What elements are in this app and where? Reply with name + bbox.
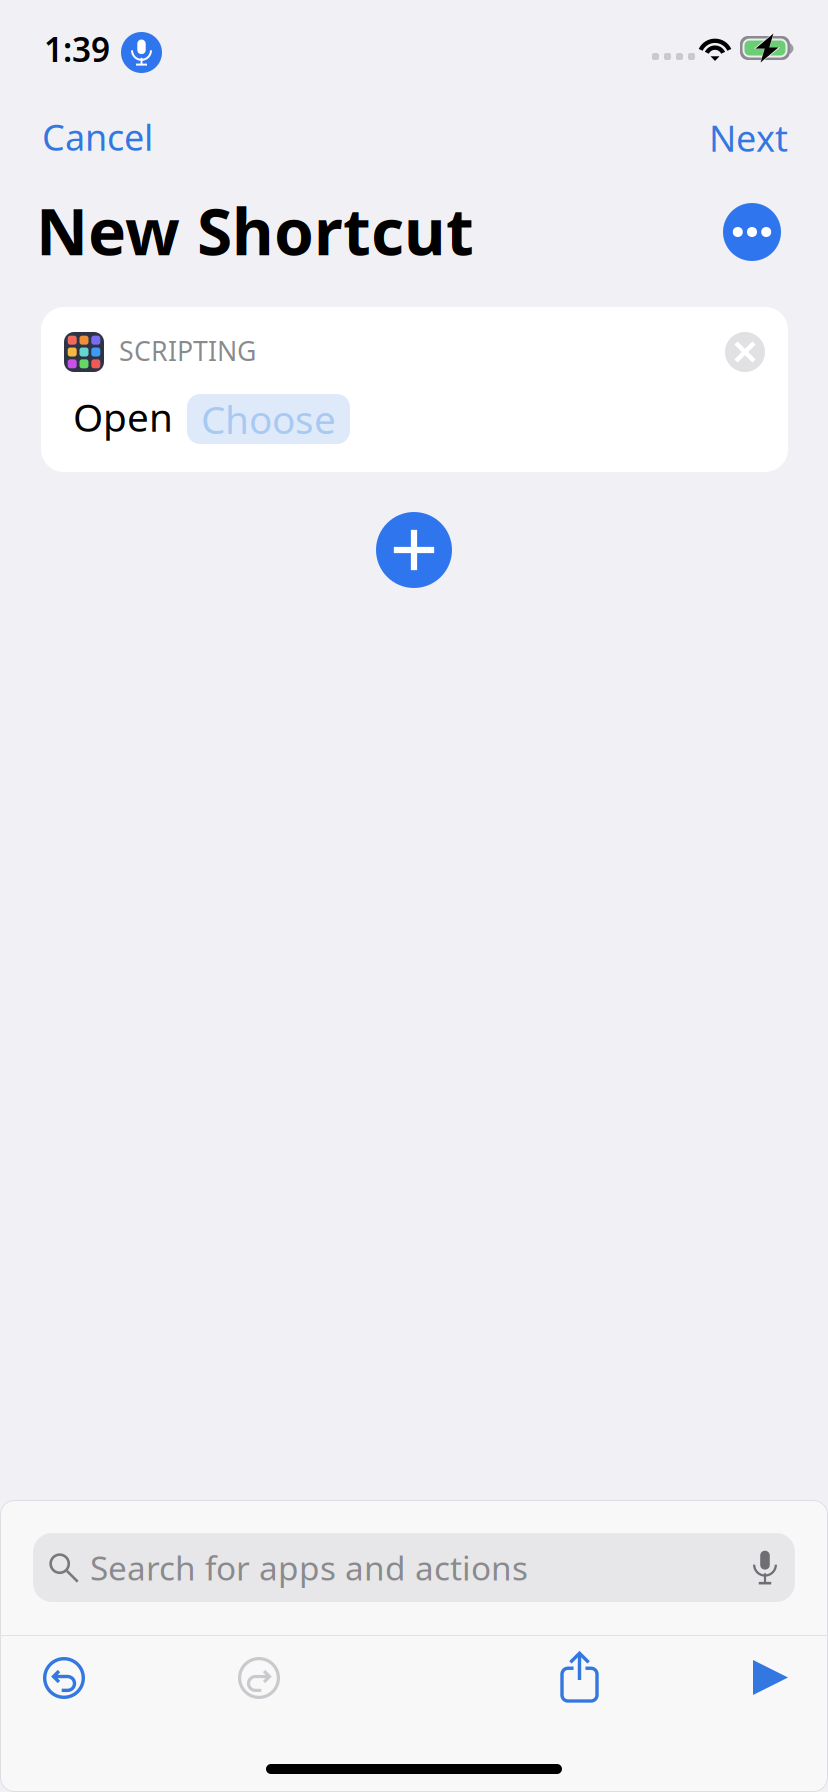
staticText: SCRIPTING <box>119 333 256 368</box>
button[interactable]: More <box>723 203 781 261</box>
button[interactable]: Run <box>735 1642 806 1713</box>
button[interactable]: Remove action <box>725 332 765 372</box>
button[interactable]: Choose <box>187 394 350 444</box>
staticText: Open <box>73 391 173 442</box>
button[interactable]: Cancel <box>34 101 161 173</box>
button[interactable]: Undo <box>26 1640 102 1716</box>
staticText: Choose <box>201 393 336 445</box>
button[interactable]: Add action <box>376 512 452 588</box>
staticText: 1:39 <box>44 27 110 71</box>
button[interactable]: Next <box>701 102 796 174</box>
button[interactable]: Redo <box>221 1640 297 1716</box>
staticText: New Shortcut <box>36 188 474 273</box>
staticText: Search for apps and actions <box>90 1545 528 1590</box>
staticText: Next <box>709 114 788 162</box>
staticText: Cancel <box>42 113 153 161</box>
button[interactable]: Share <box>546 1635 613 1717</box>
